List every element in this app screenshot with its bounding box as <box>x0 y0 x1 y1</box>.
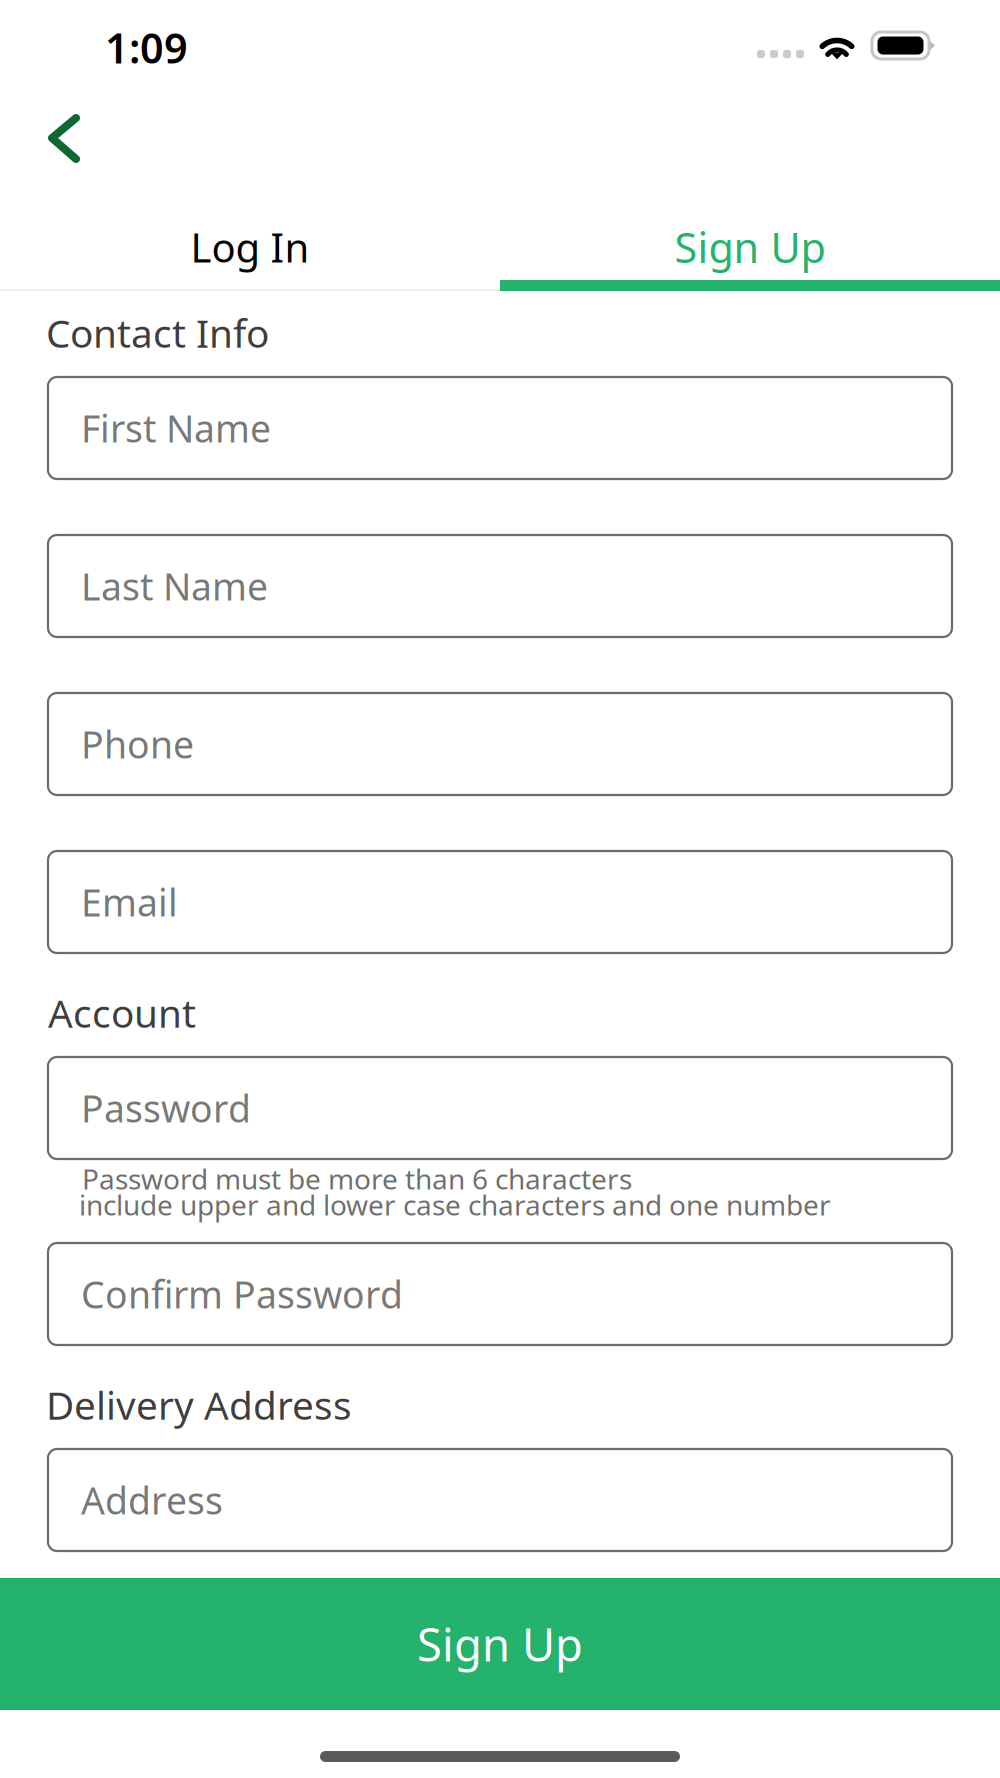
staticText: First Name <box>81 403 271 453</box>
button[interactable]: Address <box>48 1449 952 1551</box>
staticText: Account <box>48 987 196 1038</box>
staticText: Address <box>81 1475 223 1525</box>
staticText: Log In <box>190 220 309 273</box>
button[interactable]: Confirm Password <box>48 1243 952 1345</box>
button[interactable]: First Name <box>48 377 952 479</box>
staticText: 1:09 <box>105 20 188 75</box>
button[interactable]: Email <box>48 851 952 953</box>
button[interactable]: Sign Up <box>500 203 1000 291</box>
staticText: Confirm Password <box>81 1269 403 1319</box>
staticText: Delivery Address <box>46 1379 352 1430</box>
staticText: Phone <box>81 719 194 769</box>
staticText: include upper and lower case characters … <box>79 1186 831 1223</box>
button[interactable]: Log In <box>0 203 500 291</box>
button[interactable]: Password <box>48 1057 952 1159</box>
button[interactable]: Phone <box>48 693 952 795</box>
staticText: Contact Info <box>46 307 269 358</box>
staticText: Password must be more than 6 characters <box>82 1160 632 1197</box>
staticText: Sign Up <box>674 220 825 274</box>
button[interactable]: Last Name <box>48 535 952 637</box>
button[interactable]: Back <box>8 88 118 188</box>
staticText: Sign Up <box>417 1614 583 1674</box>
button[interactable]: Sign Up <box>0 1578 1000 1710</box>
staticText: Password <box>81 1083 251 1133</box>
staticText: Email <box>81 877 178 927</box>
staticText: Last Name <box>81 561 268 611</box>
